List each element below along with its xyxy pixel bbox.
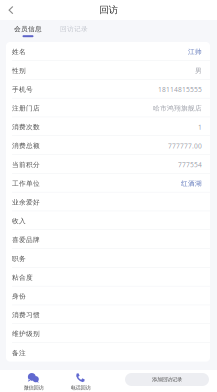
staticText: 职务 [12,255,26,263]
staticText: 维护级别 [12,330,40,338]
staticText: 消费次数 [12,123,40,131]
staticText: 哈市鸿翔旗舰店 [153,104,202,112]
staticText: 性别 [12,67,26,75]
staticText: 电话回访 [70,384,90,391]
staticText: 业余爱好 [12,198,40,206]
staticText: 消费习惯 [12,311,40,319]
button[interactable]: 添加回访记录 [125,373,209,386]
staticText: 微信回访 [23,384,43,391]
staticText: 回访 [99,4,117,16]
staticText: 备注 [12,349,26,357]
staticText: 红酒湖 [181,179,202,188]
staticText: 收入 [12,217,26,225]
staticText: 添加回访记录 [152,376,182,383]
button[interactable]: 会员信息 [5,20,51,42]
staticText: 江帅 [188,48,202,56]
staticText: 消费总额 [12,142,40,150]
button[interactable]: Back [0,0,22,20]
staticText: 777777.00 [168,141,202,150]
staticText: 工作单位 [12,179,40,188]
staticText: 1 [198,123,202,132]
staticText: 777554 [178,160,202,169]
staticText: 姓名 [12,48,26,56]
staticText: 粘合度 [12,273,33,282]
staticText: 会员信息 [14,25,42,33]
staticText: 喜爱品牌 [12,236,40,244]
button[interactable]: 电话回访 [67,370,94,392]
button[interactable]: 回访记录 [51,20,97,42]
staticText: 18114815555 [158,85,202,94]
staticText: 当前积分 [12,161,40,169]
staticText: 手机号 [12,85,33,94]
staticText: 身份 [12,292,26,300]
staticText: 回访记录 [60,25,88,33]
staticText: 男 [195,67,202,75]
staticText: 注册门店 [12,104,40,112]
button[interactable]: 微信回访 [0,370,67,392]
